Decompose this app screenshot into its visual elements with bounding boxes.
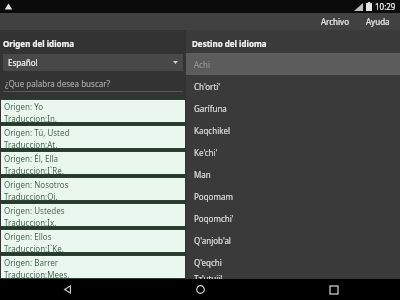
staticText: ¿Que palabra desea buscar? [5,78,110,89]
staticText: Origen del idioma [3,38,75,49]
staticText: Traduccion:Ix. [4,217,57,226]
button[interactable]: Origen: Él, Ella [1,152,185,174]
button[interactable]: Origen: Nosotros [1,178,185,200]
staticText: Destino del idioma [192,38,267,49]
button[interactable]: Ayuda [358,13,400,30]
button[interactable]: Ke'chi' [186,141,400,163]
staticText: Ke'chi' [194,147,218,158]
staticText: Traduccion:Mees. [4,269,70,278]
button[interactable]: ¿Que palabra desea buscar? [3,75,183,91]
staticText: Man [194,169,211,180]
button[interactable]: Kaqchikel [186,119,400,141]
button[interactable]: Recent apps [267,279,400,300]
staticText: Traduccion:I`Re. [4,165,64,174]
staticText: Origen: Él, Ella [4,153,59,164]
staticText: Poqomam [194,191,233,202]
staticText: Traduccion:At. [4,139,58,148]
button[interactable]: Tz'utujil [186,273,400,279]
button[interactable]: Garífuna [186,97,400,119]
staticText: Garífuna [194,103,227,114]
staticText: Origen: Ellos [4,231,52,242]
button[interactable]: Ch'orti' [186,75,400,97]
button[interactable]: Q'eqchi [186,251,400,273]
button[interactable]: Origen: Barrer [1,256,185,278]
button[interactable]: Origen: Yo [1,100,185,122]
staticText: Q'anjob'al [194,235,231,246]
button[interactable]: Q'anjob'al [186,229,400,251]
staticText: Kaqchikel [194,125,231,136]
button[interactable]: Archivo [313,13,358,30]
button[interactable]: Poqomam [186,185,400,207]
button[interactable]: Home [134,279,267,300]
staticText: Traduccion:I`Ke. [4,243,64,252]
staticText: Origen: Tú, Usted [4,127,70,138]
button[interactable]: Man [186,163,400,185]
staticText: Ch'orti' [194,81,221,92]
staticText: Q'eqchi [194,257,222,268]
staticText: Poqomchi' [194,213,234,224]
staticText: 10:29 [375,1,396,12]
button[interactable]: Poqomchi' [186,207,400,229]
button[interactable]: Origen: Ustedes [1,204,185,226]
button[interactable]: Origen: Tú, Usted [1,126,185,148]
staticText: Archivo [321,16,350,27]
staticText: Tz'utujil [194,273,223,279]
staticText: Ayuda [366,16,390,27]
staticText: Español [8,57,38,68]
staticText: Traduccion:In. [4,113,58,122]
button[interactable]: Español [3,54,183,71]
staticText: Origen: Barrer [4,257,59,268]
button[interactable]: Origen: Ellos [1,230,185,252]
staticText: Traduccion:Oj. [4,191,58,200]
staticText: Origen: Nosotros [4,179,69,190]
staticText: Origen: Yo [4,101,44,112]
button[interactable]: Achi [186,53,400,75]
staticText: Origen: Ustedes [4,205,65,216]
staticText: Achi [194,59,210,70]
button[interactable]: Back [0,279,134,300]
